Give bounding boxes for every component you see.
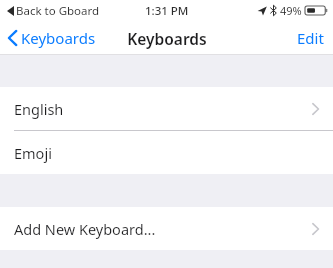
staticText: Edit <box>297 28 324 48</box>
staticText: 49% <box>280 3 302 18</box>
staticText: 1:31 PM <box>145 3 189 19</box>
button[interactable]: Back to Gboard <box>5 3 102 19</box>
button[interactable]: English <box>0 87 333 130</box>
staticText: Add New Keyboard... <box>14 219 156 239</box>
staticText: Keyboards <box>21 28 96 48</box>
staticText: Emoji <box>14 143 52 163</box>
button[interactable]: Keyboards <box>4 24 102 52</box>
button[interactable]: Add New Keyboard... <box>0 207 333 250</box>
staticText: Back to Gboard <box>16 3 100 19</box>
button[interactable]: Edit <box>292 24 329 52</box>
staticText: English <box>14 99 64 119</box>
button[interactable]: Emoji <box>0 131 333 174</box>
staticText: Keyboards <box>127 28 207 49</box>
